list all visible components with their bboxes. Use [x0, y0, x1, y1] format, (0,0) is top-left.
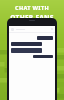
- staticText: OTHER FANS: [10, 13, 54, 22]
- button[interactable]: [11, 48, 53, 53]
- button[interactable]: [11, 42, 53, 46]
- staticText: CHAT WITH: [15, 4, 49, 11]
- button[interactable]: [11, 55, 53, 58]
- button[interactable]: Profile: [9, 26, 55, 32]
- button[interactable]: [11, 36, 53, 40]
